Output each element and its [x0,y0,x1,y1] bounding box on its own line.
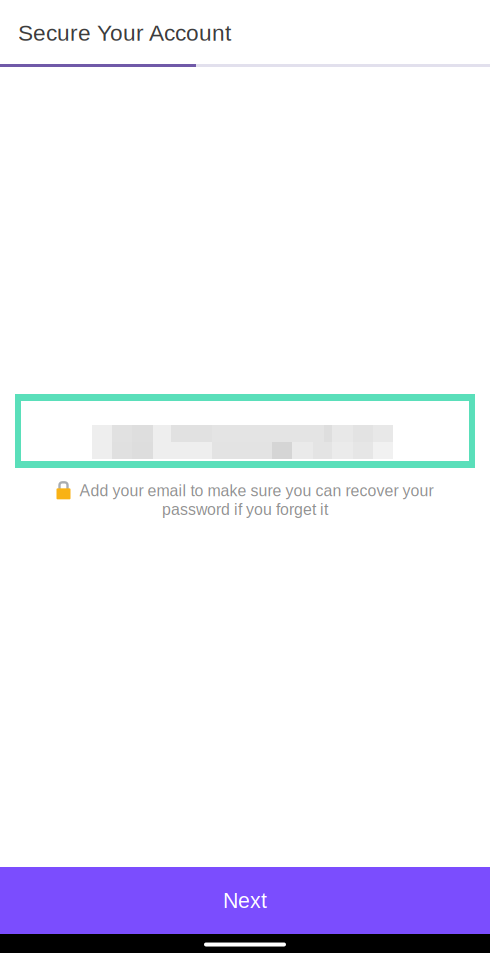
staticText: Secure Your Account [18,20,231,46]
staticText: Next [223,889,267,912]
staticText: password if you forget it [162,501,328,518]
staticText: Add your email to make sure you can reco… [79,482,433,500]
button[interactable]: Email address [0,394,490,468]
button[interactable]: Next [0,867,490,934]
